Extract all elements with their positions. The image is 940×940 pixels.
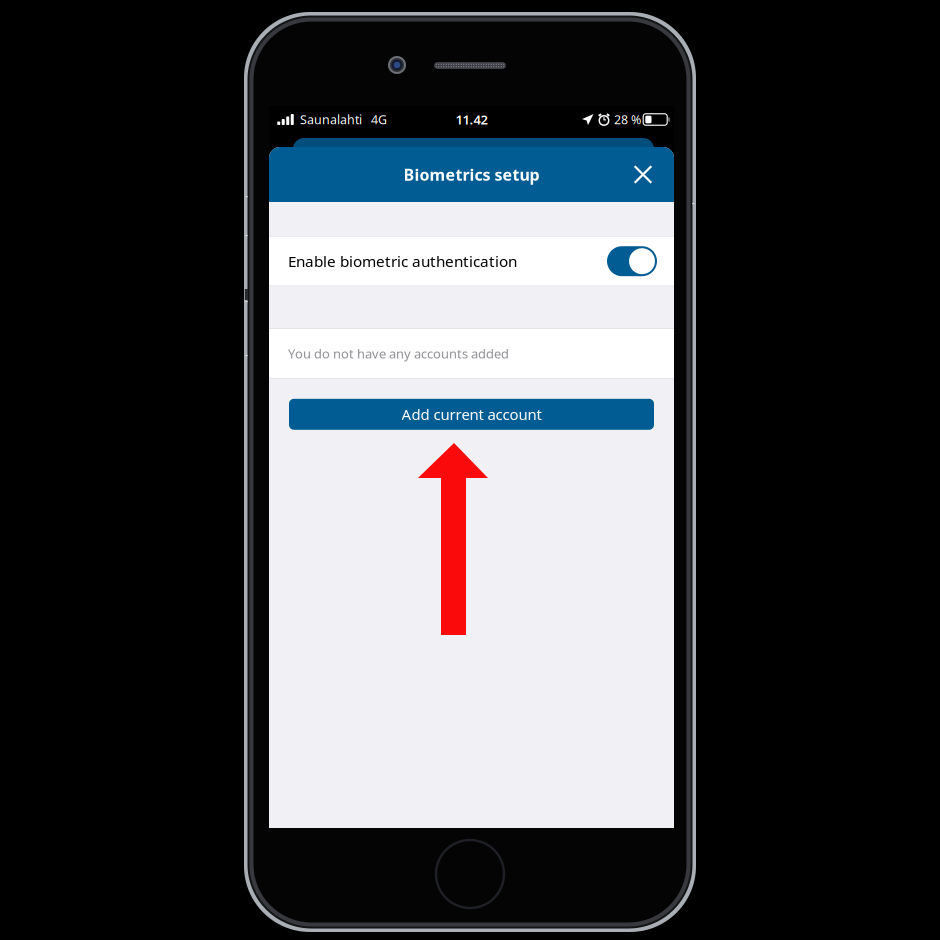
staticText: Biometrics setup (403, 164, 539, 185)
staticText: Saunalahti (300, 111, 362, 128)
button[interactable]: Enable biometric authentication (269, 237, 674, 286)
button[interactable]: Add current account (289, 399, 654, 430)
staticText: 28 % (614, 111, 641, 128)
staticText: 4G (371, 111, 387, 128)
staticText: You do not have any accounts added (288, 345, 509, 362)
button[interactable]: Enable biometric authentication (607, 246, 657, 276)
staticText: Add current account (401, 404, 541, 424)
button[interactable]: Close (623, 152, 663, 196)
staticText: 11.42 (455, 111, 487, 128)
staticText: Enable biometric authentication (288, 251, 517, 272)
